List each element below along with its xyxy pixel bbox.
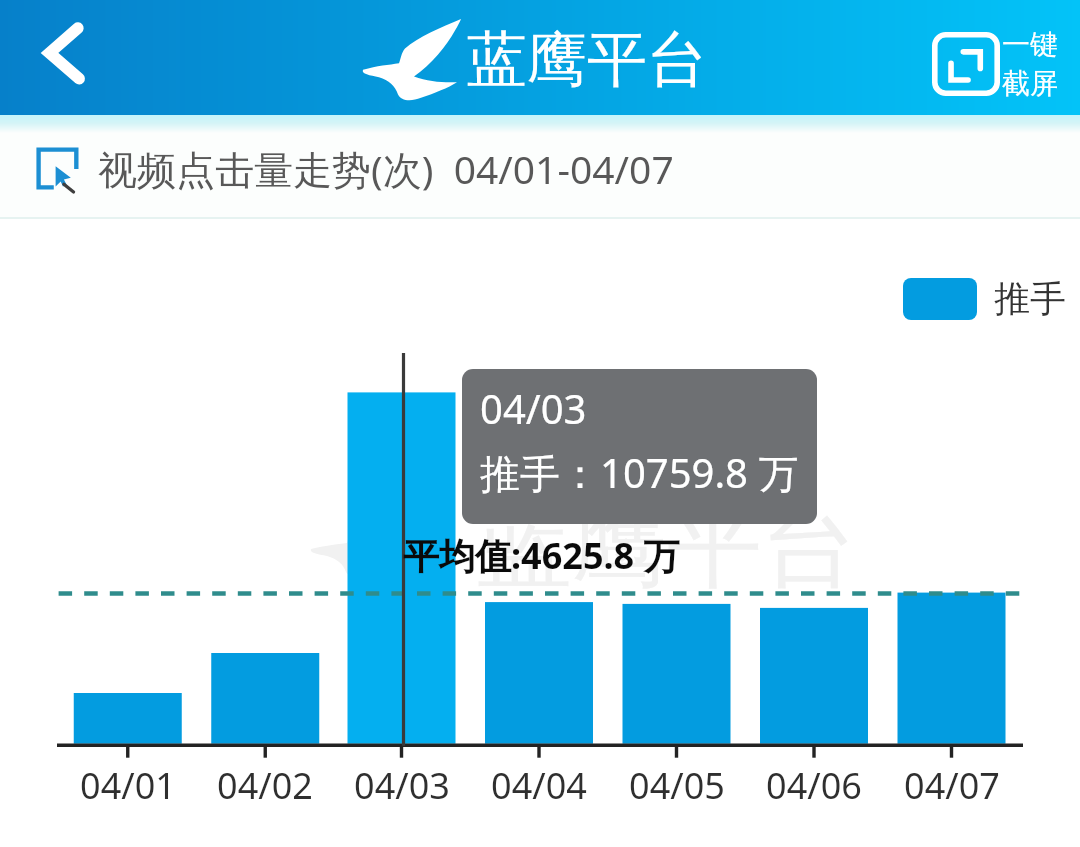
staticText: 蓝鹰平台 <box>467 22 707 98</box>
button[interactable]: 视频点击量走势(次) 04/01-04/07 <box>0 136 694 201</box>
staticText: 平均值:4625.8 万 <box>403 531 680 580</box>
staticText: 04/03 <box>354 761 450 810</box>
staticText: 04/02 <box>217 761 313 810</box>
staticText: 04/04 <box>491 761 587 810</box>
staticText: 一键 <box>1002 27 1058 62</box>
staticText: 推手：10759.8 万 <box>480 445 799 500</box>
staticText: 04/01 <box>80 761 176 810</box>
button[interactable]: 一键截屏 <box>928 23 1062 105</box>
button[interactable]: 视频点击量柱状图 <box>0 219 1080 847</box>
staticText: 04/03 <box>480 381 587 435</box>
staticText: 04/05 <box>629 761 725 810</box>
staticText: 蓝鹰平台 <box>477 486 857 606</box>
button[interactable]: 推手 <box>899 272 1070 325</box>
button[interactable]: Back <box>20 15 106 101</box>
staticText: 截屏 <box>1002 66 1058 101</box>
staticText: 04/07 <box>904 761 1000 810</box>
staticText: 推手 <box>994 276 1066 321</box>
staticText: 视频点击量走势(次) 04/01-04/07 <box>98 142 674 195</box>
staticText: 04/06 <box>766 761 862 810</box>
